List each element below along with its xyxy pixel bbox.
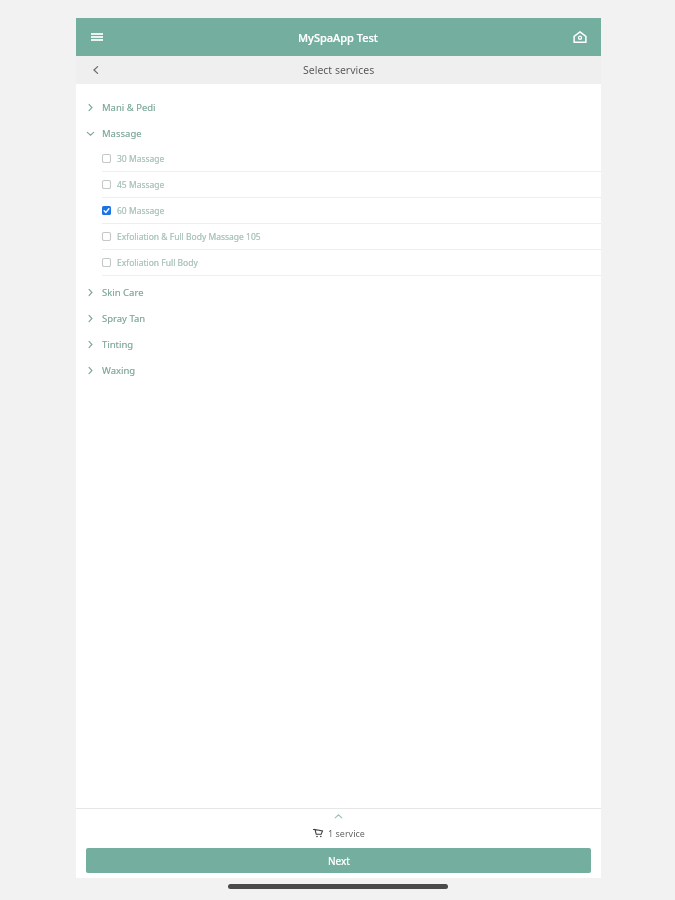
button[interactable]: Next (86, 848, 591, 873)
staticText: Skin Care (102, 286, 144, 299)
staticText: Next (328, 854, 350, 868)
staticText: Spray Tan (102, 312, 146, 325)
button[interactable]: Back (84, 58, 108, 82)
button[interactable]: 30 Massage (76, 146, 601, 172)
button[interactable]: Tinting (76, 331, 601, 357)
button[interactable]: Menu (83, 23, 111, 51)
staticText: 45 Massage (117, 179, 165, 191)
staticText: Select services (303, 63, 375, 77)
staticText: Massage (102, 127, 142, 140)
staticText: 30 Massage (117, 153, 165, 165)
button[interactable]: Exfoliation & Full Body Massage 105 (76, 224, 601, 250)
button[interactable]: Massage (76, 120, 601, 146)
button[interactable]: Waxing (76, 357, 601, 383)
button[interactable]: 60 Massage (76, 198, 601, 224)
staticText: Waxing (102, 364, 136, 377)
staticText: Exfoliation & Full Body Massage 105 (117, 231, 261, 243)
button[interactable]: Expand cart (76, 809, 601, 823)
staticText: 1 service (328, 827, 365, 839)
staticText: Mani & Pedi (102, 101, 156, 114)
button[interactable]: Mani & Pedi (76, 94, 601, 120)
button[interactable]: Skin Care (76, 279, 601, 305)
staticText: Exfoliation Full Body (117, 257, 198, 269)
button[interactable]: Spray Tan (76, 305, 601, 331)
button[interactable]: Exfoliation Full Body (76, 250, 601, 276)
staticText: 60 Massage (117, 205, 165, 217)
button[interactable]: 1 service (76, 823, 601, 843)
button[interactable]: 45 Massage (76, 172, 601, 198)
staticText: Tinting (102, 338, 134, 351)
button[interactable]: Home (566, 23, 594, 51)
staticText: MySpaApp Test (298, 30, 379, 45)
